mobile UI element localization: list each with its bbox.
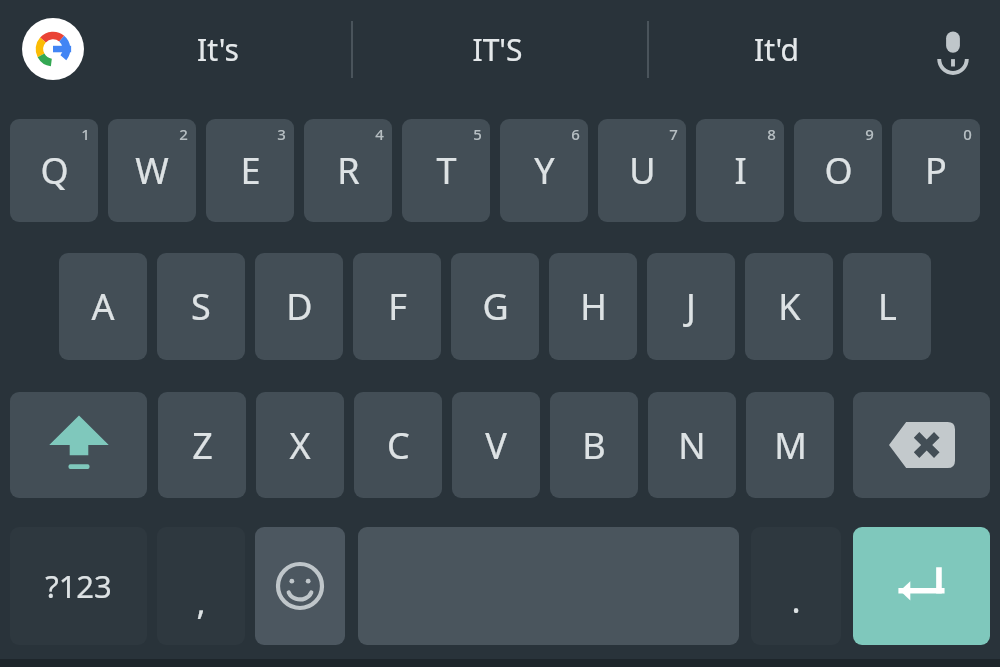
- staticText: I: [734, 146, 747, 195]
- staticText: 7: [669, 124, 678, 144]
- staticText: E: [240, 146, 261, 195]
- button[interactable]: J: [647, 253, 735, 360]
- button[interactable]: D: [255, 253, 343, 360]
- button[interactable]: K: [745, 253, 833, 360]
- staticText: 5: [473, 124, 482, 144]
- staticText: ?123: [45, 565, 112, 607]
- button[interactable]: B: [550, 392, 638, 498]
- button[interactable]: T: [402, 119, 490, 222]
- button[interactable]: M: [746, 392, 834, 498]
- staticText: 9: [865, 124, 874, 144]
- button[interactable]: S: [157, 253, 245, 360]
- staticText: ,: [196, 579, 206, 625]
- staticText: 2: [179, 124, 188, 144]
- button[interactable]: I: [696, 119, 784, 222]
- button[interactable]: Y: [500, 119, 588, 222]
- staticText: D: [286, 282, 313, 331]
- staticText: H: [580, 282, 607, 331]
- button[interactable]: E: [206, 119, 294, 222]
- button[interactable]: ?123: [10, 527, 147, 645]
- button[interactable]: G: [451, 253, 539, 360]
- staticText: J: [686, 282, 696, 331]
- button[interactable]: V: [452, 392, 540, 498]
- staticText: R: [337, 146, 360, 195]
- button[interactable]: Backspace: [853, 392, 990, 498]
- staticText: L: [878, 282, 897, 331]
- staticText: 4: [375, 124, 384, 144]
- staticText: F: [388, 282, 407, 331]
- staticText: P: [925, 146, 947, 195]
- button[interactable]: IT'S: [407, 12, 587, 86]
- staticText: V: [485, 421, 507, 470]
- staticText: 1: [81, 124, 90, 144]
- button[interactable]: .: [751, 527, 841, 645]
- staticText: X: [289, 421, 311, 470]
- staticText: Z: [192, 421, 213, 470]
- staticText: .: [791, 577, 801, 623]
- staticText: W: [135, 146, 169, 195]
- staticText: K: [778, 282, 801, 331]
- button[interactable]: F: [353, 253, 441, 360]
- button[interactable]: O: [794, 119, 882, 222]
- staticText: It'd: [754, 29, 799, 70]
- staticText: Q: [40, 146, 69, 195]
- button[interactable]: Z: [158, 392, 246, 498]
- button[interactable]: W: [108, 119, 196, 222]
- button[interactable]: L: [843, 253, 931, 360]
- staticText: IT'S: [472, 29, 523, 70]
- button[interactable]: R: [304, 119, 392, 222]
- staticText: T: [436, 146, 457, 195]
- button[interactable]: H: [549, 253, 637, 360]
- staticText: 0: [963, 124, 972, 144]
- staticText: O: [824, 146, 853, 195]
- button[interactable]: It's: [128, 12, 308, 86]
- button[interactable]: Google: [22, 18, 84, 80]
- button[interactable]: U: [598, 119, 686, 222]
- button[interactable]: P: [892, 119, 980, 222]
- staticText: N: [678, 421, 706, 470]
- staticText: S: [191, 282, 211, 331]
- staticText: 3: [277, 124, 286, 144]
- staticText: 6: [571, 124, 580, 144]
- button[interactable]: ,: [157, 527, 245, 645]
- staticText: Y: [534, 146, 555, 195]
- button[interactable]: Emoji: [255, 527, 345, 645]
- button[interactable]: Q: [10, 119, 98, 222]
- staticText: It's: [197, 29, 239, 70]
- button[interactable]: N: [648, 392, 736, 498]
- button[interactable]: C: [354, 392, 442, 498]
- button[interactable]: It'd: [686, 12, 866, 86]
- staticText: B: [582, 421, 606, 470]
- staticText: G: [482, 282, 509, 331]
- button[interactable]: Caps lock: [10, 392, 147, 498]
- staticText: 8: [767, 124, 776, 144]
- button[interactable]: Voice input: [915, 12, 991, 86]
- button[interactable]: Enter: [853, 527, 990, 645]
- staticText: M: [774, 421, 807, 470]
- button[interactable]: X: [256, 392, 344, 498]
- staticText: A: [91, 282, 115, 331]
- staticText: C: [387, 421, 410, 470]
- staticText: U: [629, 146, 656, 195]
- button[interactable]: A: [59, 253, 147, 360]
